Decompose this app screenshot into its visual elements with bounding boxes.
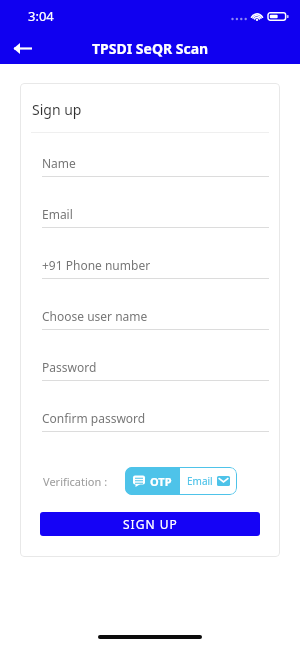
staticText: Confirm password bbox=[42, 410, 146, 426]
button[interactable]: SIGN UP bbox=[40, 512, 260, 536]
button[interactable]: Back bbox=[5, 32, 39, 64]
button[interactable]: +91 Phone number bbox=[20, 257, 280, 308]
button[interactable]: Password bbox=[20, 359, 280, 410]
button[interactable]: Confirm password bbox=[20, 410, 280, 461]
staticText: Password bbox=[42, 359, 97, 375]
staticText: OTP bbox=[150, 474, 172, 489]
staticText: Email bbox=[42, 206, 73, 222]
button[interactable]: Email bbox=[180, 467, 237, 495]
button[interactable]: Name bbox=[20, 155, 280, 206]
button[interactable]: Email bbox=[20, 206, 280, 257]
staticText: Email bbox=[187, 474, 213, 488]
staticText: Name bbox=[42, 155, 76, 171]
staticText: Sign up bbox=[32, 100, 82, 119]
staticText: +91 Phone number bbox=[42, 257, 151, 273]
staticText: TPSDI SeQR Scan bbox=[92, 39, 209, 58]
staticText: 3:04 bbox=[28, 7, 54, 25]
button[interactable]: OTP bbox=[125, 467, 180, 495]
staticText: Choose user name bbox=[42, 308, 148, 324]
staticText: Verification : bbox=[43, 474, 108, 489]
button[interactable]: Choose user name bbox=[20, 308, 280, 359]
staticText: SIGN UP bbox=[123, 516, 178, 532]
